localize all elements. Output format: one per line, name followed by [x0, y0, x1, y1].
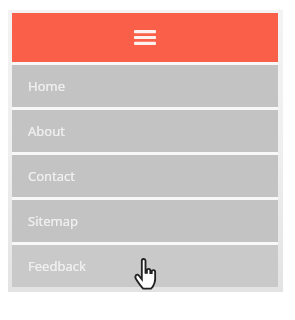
- button[interactable]: Feedback: [12, 245, 278, 287]
- staticText: About: [28, 122, 65, 140]
- staticText: Contact: [28, 167, 76, 185]
- staticText: Home: [28, 77, 65, 95]
- button[interactable]: About: [12, 110, 278, 152]
- staticText: Sitemap: [28, 212, 78, 230]
- button[interactable]: Contact: [12, 155, 278, 197]
- button[interactable]: Toggle navigation menu: [12, 13, 278, 62]
- button[interactable]: Sitemap: [12, 200, 278, 242]
- staticText: Feedback: [28, 257, 86, 275]
- button[interactable]: Home: [12, 65, 278, 107]
